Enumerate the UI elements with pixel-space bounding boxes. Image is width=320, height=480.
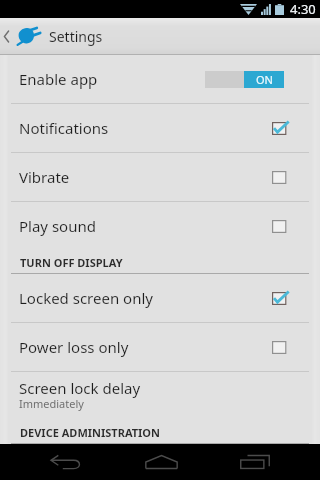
staticText: Locked screen only — [19, 288, 153, 308]
button[interactable]: Locked screen only — [0, 274, 320, 322]
staticText: ON — [256, 72, 273, 87]
staticText: Settings — [49, 27, 103, 46]
staticText: Power loss only — [19, 337, 129, 357]
other: Navigate up — [4, 31, 9, 42]
button[interactable]: Recent apps — [209, 444, 301, 480]
staticText: Play sound — [19, 216, 96, 236]
button[interactable]: Navigate up — [0, 18, 320, 55]
button[interactable]: Screen lock delay — [0, 372, 320, 420]
button[interactable]: Play sound — [0, 202, 320, 250]
button[interactable]: Power loss only — [0, 323, 320, 371]
staticText: Enable app — [19, 69, 98, 89]
staticText: DEVICE ADMINISTRATION — [20, 425, 160, 440]
button[interactable]: Home — [117, 444, 205, 480]
button[interactable]: Notifications — [0, 104, 320, 152]
button[interactable]: Enable app — [0, 55, 320, 103]
button[interactable]: Back — [12, 444, 119, 480]
staticText: Screen lock delay — [19, 378, 141, 398]
staticText: Immediately — [19, 396, 84, 411]
button[interactable]: Vibrate — [0, 153, 320, 201]
staticText: 4:30 — [290, 0, 316, 18]
staticText: Notifications — [19, 118, 109, 138]
staticText: TURN OFF DISPLAY — [20, 255, 123, 270]
staticText: Vibrate — [19, 167, 70, 187]
